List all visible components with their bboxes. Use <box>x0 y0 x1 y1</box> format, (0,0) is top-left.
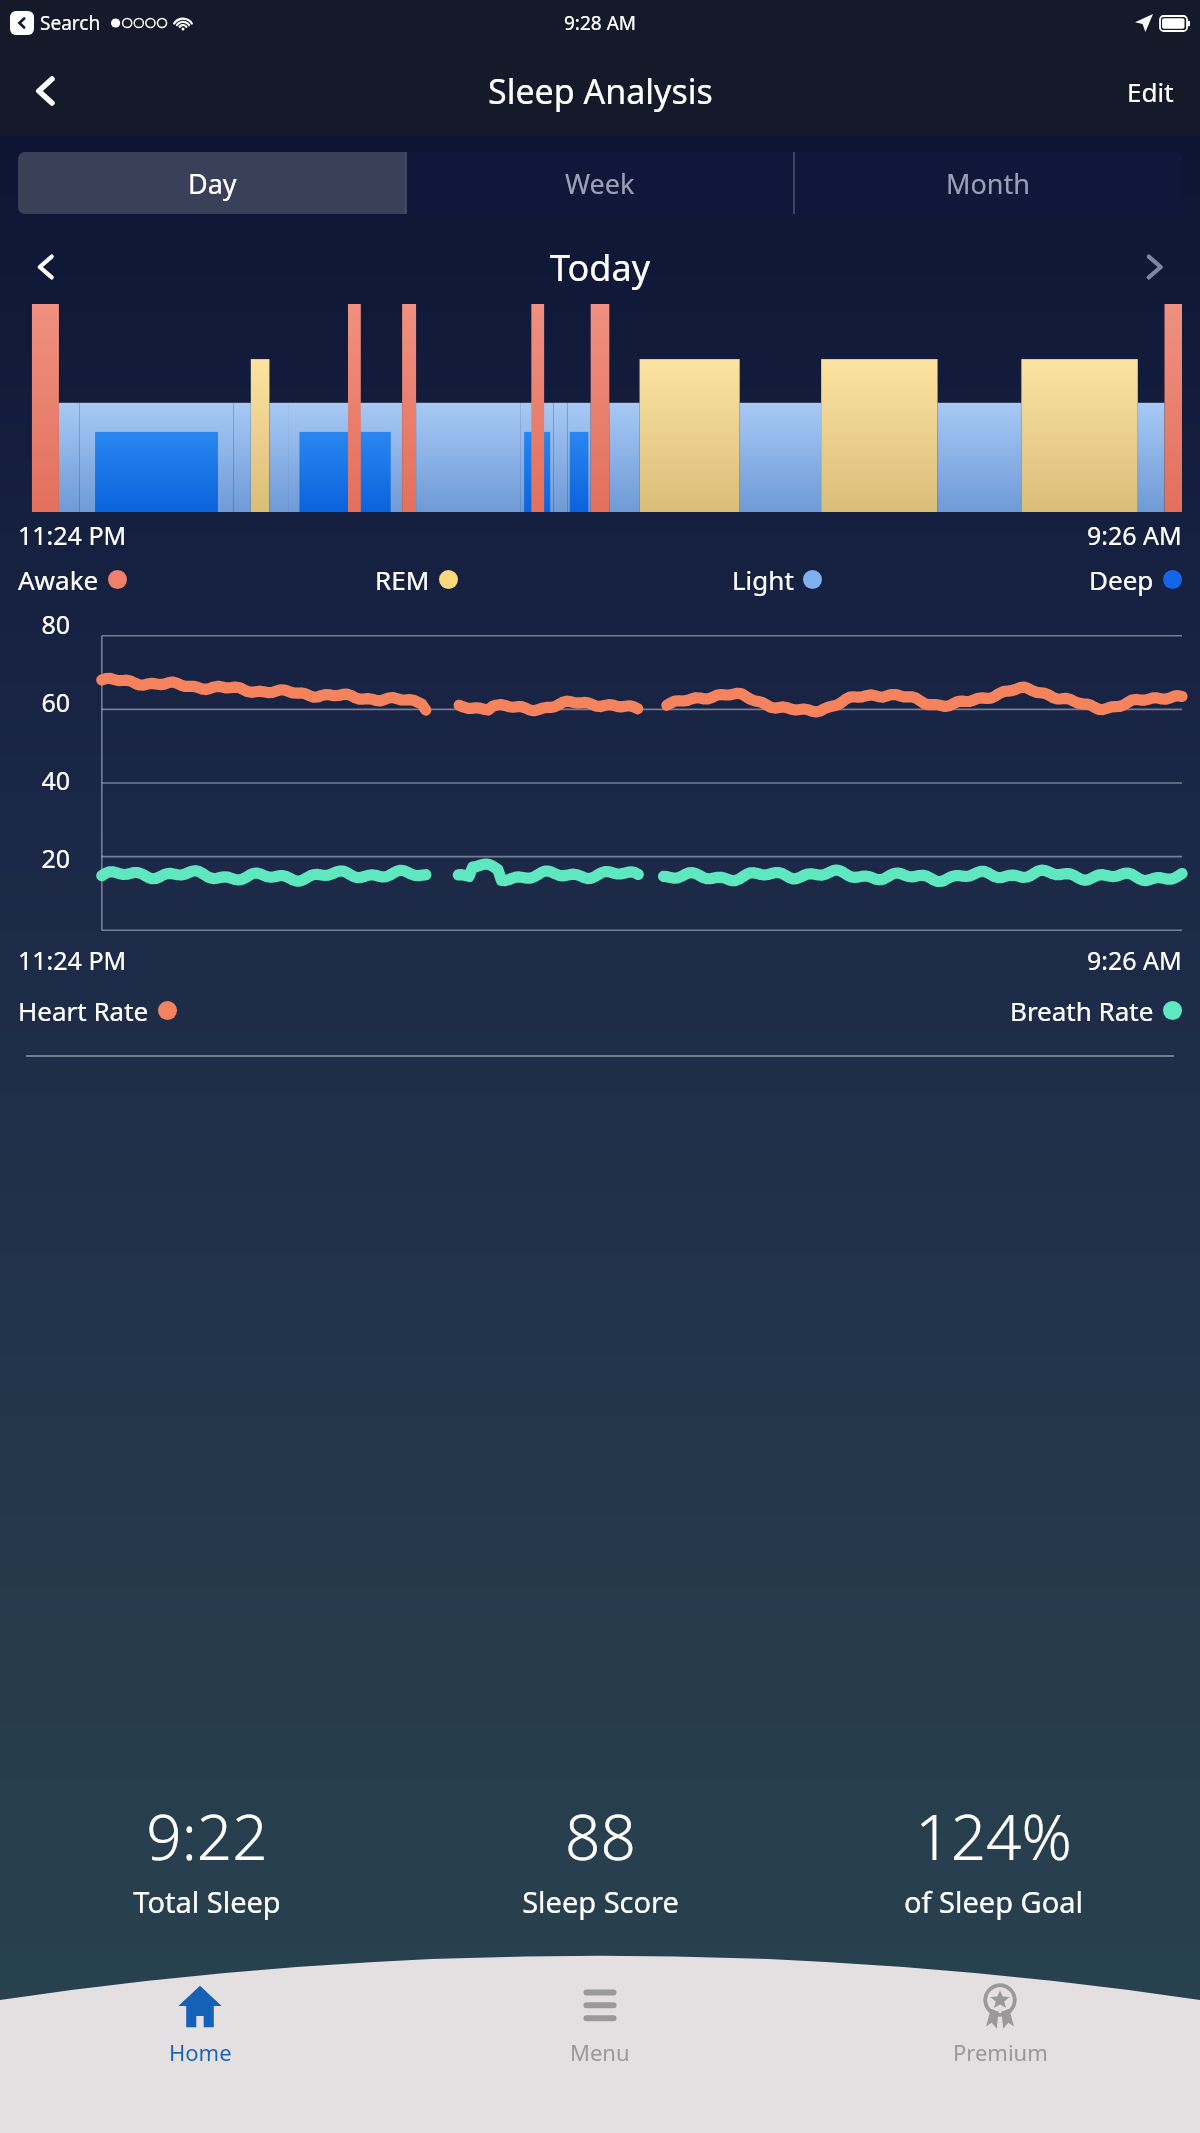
staticText: 124% <box>915 1794 1072 1878</box>
staticText: REM <box>375 562 430 597</box>
staticText: Total Sleep <box>133 1882 281 1921</box>
staticText: Home <box>169 2037 232 2067</box>
staticText: 80 <box>18 607 70 641</box>
staticText: 9:28 AM <box>564 10 637 36</box>
staticText: 20 <box>18 841 70 875</box>
button[interactable]: Premium <box>800 1983 1200 2067</box>
staticText: Search <box>40 10 101 36</box>
staticText: Sleep Score <box>522 1882 679 1921</box>
button[interactable]: Week <box>406 152 794 214</box>
staticText: 11:24 PM <box>18 518 127 552</box>
button[interactable]: Home <box>0 1983 400 2067</box>
staticText: Sleep Analysis <box>488 68 713 114</box>
staticText: 9:22 <box>146 1794 268 1878</box>
button[interactable]: Previous day <box>20 241 72 293</box>
button[interactable]: Next day <box>1128 241 1180 293</box>
staticText: 60 <box>18 685 70 719</box>
staticText: Heart Rate <box>18 993 149 1028</box>
staticText: Light <box>732 562 794 597</box>
staticText: Deep <box>1089 562 1154 597</box>
staticText: Edit <box>1127 74 1174 109</box>
button[interactable]: Month <box>794 152 1182 214</box>
staticText: Today <box>72 243 1128 292</box>
staticText: Week <box>565 165 635 202</box>
staticText: Menu <box>570 2037 630 2067</box>
button[interactable]: Day <box>18 152 406 214</box>
staticText: 88 <box>565 1794 636 1878</box>
staticText: of Sleep Goal <box>904 1882 1083 1921</box>
staticText: Awake <box>18 562 99 597</box>
button[interactable]: Back <box>18 63 74 119</box>
staticText: Breath Rate <box>1010 993 1154 1028</box>
staticText: 40 <box>18 763 70 797</box>
staticText: Day <box>188 165 237 202</box>
staticText: Month <box>946 165 1030 202</box>
staticText: 9:26 AM <box>1087 943 1182 977</box>
staticText: 9:26 AM <box>1087 518 1182 552</box>
button[interactable]: Edit <box>1119 66 1182 117</box>
staticText: 11:24 PM <box>18 943 127 977</box>
button[interactable]: Menu <box>400 1983 800 2067</box>
staticText: Premium <box>953 2037 1048 2067</box>
